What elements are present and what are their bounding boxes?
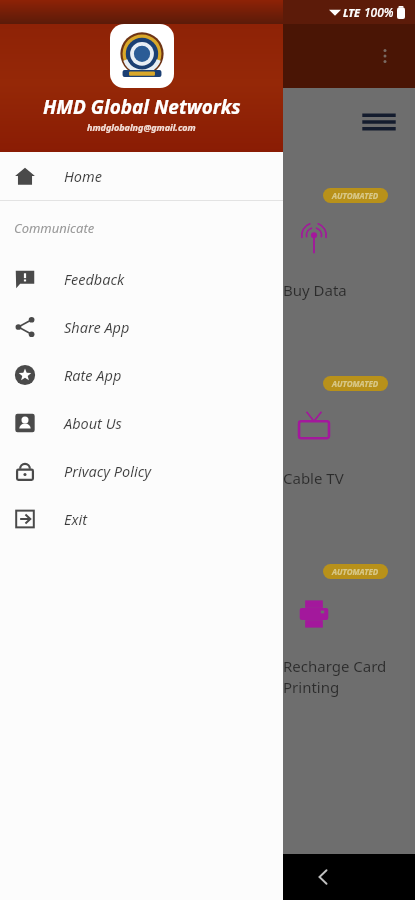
staticText: Share App [64, 317, 130, 337]
button[interactable]: Home [0, 152, 283, 200]
staticText: 11:00 [10, 3, 43, 21]
button[interactable]: Rate App [0, 351, 283, 399]
button[interactable]: Privacy Policy [0, 447, 283, 495]
staticText: AUTOMATED [332, 378, 379, 389]
staticText: Feedback [64, 269, 125, 289]
staticText: AUTOMATED [332, 566, 379, 577]
staticText: AUTOMATED [332, 190, 379, 201]
staticText: hmdglobalng@gmail.com [87, 121, 196, 133]
staticText: Cable TV [283, 468, 344, 488]
staticText: About Us [64, 413, 122, 433]
staticText: 100% [364, 4, 394, 20]
button[interactable]: Open navigation drawer [357, 100, 401, 144]
button[interactable]: Share App [0, 303, 283, 351]
button[interactable]: About Us [0, 399, 283, 447]
staticText: LTE [343, 5, 361, 20]
staticText: Exit [64, 509, 88, 529]
button[interactable]: Feedback [0, 255, 283, 303]
button[interactable]: Exit [0, 495, 283, 543]
staticText: HMD Global Networks [43, 94, 241, 120]
button[interactable]: Back [299, 854, 347, 900]
button[interactable]: More options [365, 36, 405, 76]
staticText: Rate App [64, 365, 122, 385]
staticText: Privacy Policy [64, 461, 152, 481]
staticText: Recharge Card Printing [283, 656, 387, 698]
staticText: Buy Data [283, 280, 347, 300]
staticText: Communicate [14, 219, 95, 237]
staticText: Home [64, 166, 102, 186]
